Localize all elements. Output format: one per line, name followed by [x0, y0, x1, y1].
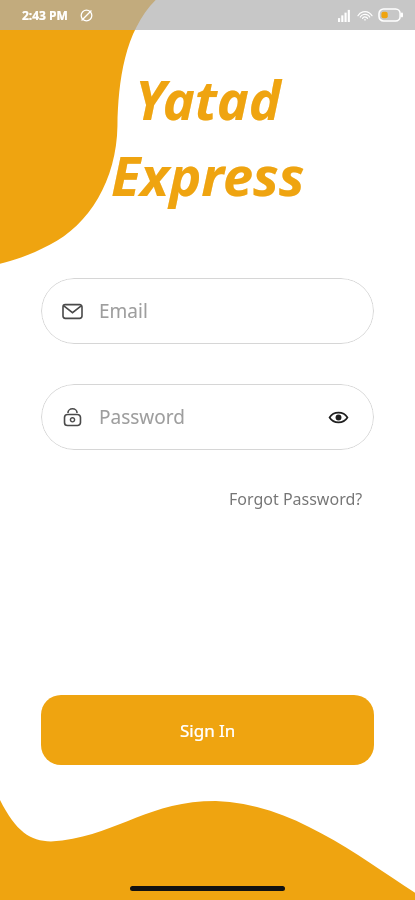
- staticText: Sign In: [180, 719, 236, 742]
- staticText: Yatad: [135, 62, 281, 136]
- button[interactable]: Sign In: [41, 695, 374, 765]
- button[interactable]: Password: [41, 384, 374, 450]
- button[interactable]: Show password: [324, 403, 352, 431]
- staticText: Email: [99, 298, 148, 324]
- button[interactable]: Forgot Password?: [225, 484, 367, 514]
- staticText: Password: [99, 404, 324, 430]
- button[interactable]: Email: [41, 278, 374, 344]
- staticText: Forgot Password?: [229, 488, 363, 510]
- staticText: 2:43 PM: [22, 7, 68, 23]
- staticText: Express: [111, 138, 305, 212]
